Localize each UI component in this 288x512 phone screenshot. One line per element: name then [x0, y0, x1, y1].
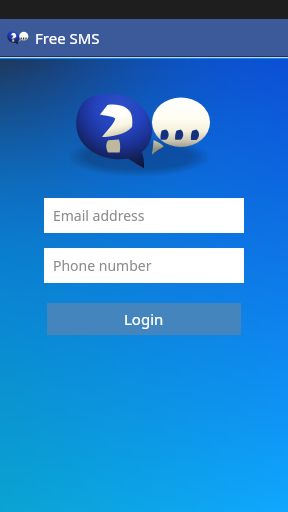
- staticText: Login: [124, 309, 164, 329]
- button[interactable]: Free SMS: [0, 19, 288, 56]
- staticText: Free SMS: [35, 28, 100, 48]
- staticText: Email address: [53, 206, 145, 225]
- button[interactable]: Phone number: [44, 248, 244, 283]
- button[interactable]: Login: [47, 303, 241, 335]
- button[interactable]: Email address: [44, 198, 244, 233]
- staticText: Phone number: [53, 256, 152, 275]
- other: Free SMS: [7, 30, 29, 46]
